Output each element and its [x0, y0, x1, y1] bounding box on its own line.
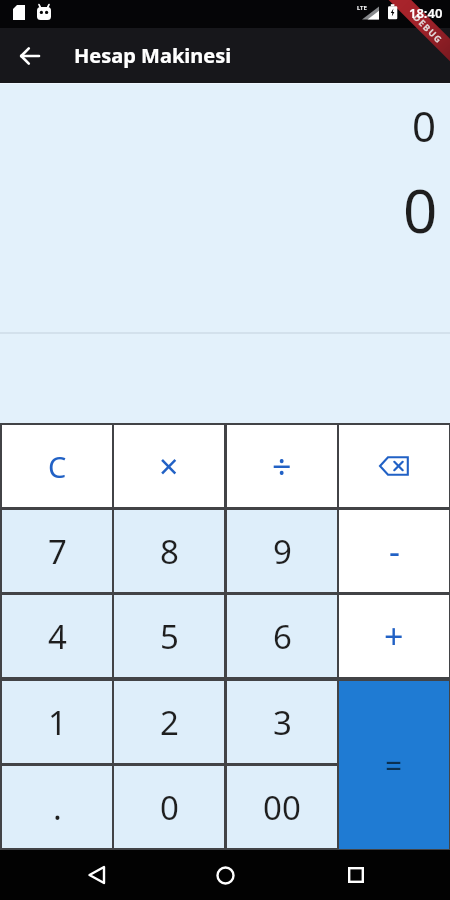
- staticText: 7: [48, 529, 67, 574]
- button[interactable]: 0: [114, 766, 224, 848]
- button[interactable]: 5: [114, 595, 224, 677]
- button[interactable]: ÷: [227, 425, 337, 507]
- staticText: 8: [160, 529, 179, 574]
- staticText: 5: [160, 614, 179, 659]
- staticText: .: [53, 785, 62, 830]
- staticText: 6: [273, 614, 292, 659]
- button[interactable]: [339, 425, 449, 507]
- button[interactable]: 6: [227, 595, 337, 677]
- button[interactable]: [16, 42, 44, 70]
- button[interactable]: +: [339, 595, 449, 677]
- staticText: 1: [48, 700, 67, 745]
- button[interactable]: 2: [114, 681, 224, 763]
- staticText: Hesap Makinesi: [74, 42, 232, 69]
- staticText: ÷: [272, 443, 292, 489]
- staticText: 00: [263, 785, 301, 830]
- staticText: 3: [273, 700, 292, 745]
- staticText: =: [385, 745, 403, 786]
- button[interactable]: -: [339, 510, 449, 592]
- button[interactable]: 4: [2, 595, 112, 677]
- staticText: 0: [160, 785, 179, 830]
- staticText: ×: [159, 443, 179, 489]
- staticText: -: [389, 528, 400, 574]
- staticText: 4: [48, 614, 67, 659]
- staticText: C: [48, 447, 67, 486]
- staticText: DEBUG: [411, 11, 446, 46]
- button[interactable]: ×: [114, 425, 224, 507]
- button[interactable]: C: [2, 425, 112, 507]
- staticText: 2: [160, 700, 179, 745]
- staticText: +: [384, 613, 404, 659]
- button[interactable]: 00: [227, 766, 337, 848]
- staticText: LTE: [357, 4, 367, 12]
- staticText: 9: [273, 529, 292, 574]
- button[interactable]: [339, 858, 373, 892]
- button[interactable]: .: [2, 766, 112, 848]
- button[interactable]: 3: [227, 681, 337, 763]
- button[interactable]: 8: [114, 510, 224, 592]
- button[interactable]: 9: [227, 510, 337, 592]
- button[interactable]: =: [339, 681, 449, 849]
- button[interactable]: [208, 858, 242, 892]
- staticText: 18:40: [409, 4, 443, 22]
- button[interactable]: 1: [2, 681, 112, 763]
- button[interactable]: [80, 858, 114, 892]
- staticText: 0: [403, 169, 438, 251]
- staticText: 0: [412, 97, 437, 154]
- button[interactable]: 7: [2, 510, 112, 592]
